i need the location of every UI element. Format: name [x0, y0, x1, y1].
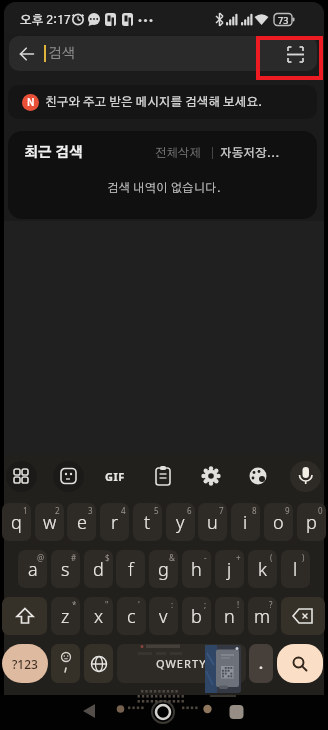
staticText: t	[144, 510, 151, 535]
staticText: -	[204, 552, 207, 562]
button[interactable]: x	[84, 597, 113, 635]
button[interactable]: QWERTY	[117, 644, 246, 683]
staticText: 5	[154, 505, 159, 515]
staticText: 4	[121, 505, 126, 515]
staticText: 검색	[48, 47, 75, 61]
staticText: q	[11, 510, 22, 535]
staticText: 6	[187, 505, 192, 515]
button[interactable]: v	[149, 597, 178, 635]
staticText: 3	[88, 505, 93, 515]
staticText: d	[93, 557, 104, 582]
button[interactable]: k	[248, 550, 277, 588]
staticText: 2	[55, 505, 60, 515]
button[interactable]: j	[215, 550, 244, 588]
button[interactable]: d	[84, 550, 113, 588]
button[interactable]: y	[166, 503, 195, 541]
staticText: "	[105, 599, 109, 609]
staticText: (	[270, 552, 273, 562]
button[interactable]: ?123	[2, 644, 48, 683]
staticText: 최근 검색	[24, 146, 84, 160]
staticText: &	[169, 552, 175, 562]
staticText: w	[43, 510, 57, 535]
staticText: o	[273, 510, 284, 535]
button[interactable]: s	[51, 550, 80, 588]
button[interactable]	[17, 44, 37, 64]
staticText: y	[176, 510, 185, 535]
staticText: )	[302, 552, 305, 562]
staticText: 7	[219, 505, 224, 515]
button[interactable]	[53, 461, 84, 492]
button[interactable]: b	[182, 597, 211, 635]
staticText: j	[227, 557, 232, 582]
staticText: c	[127, 604, 136, 629]
staticText: QWERTY	[156, 656, 207, 671]
staticText: v	[159, 604, 168, 629]
staticText: !	[237, 599, 240, 609]
staticText: s	[61, 557, 70, 582]
staticText: p	[306, 510, 317, 535]
button[interactable]	[2, 597, 47, 635]
staticText: @	[37, 552, 45, 562]
staticText: *	[72, 599, 77, 609]
staticText: 전체삭제	[155, 147, 202, 159]
staticText: h	[191, 557, 202, 582]
staticText: u	[207, 510, 218, 535]
staticText: 검색 내역이 없습니다.	[107, 182, 221, 194]
button[interactable]	[51, 644, 80, 683]
staticText: l	[293, 557, 298, 582]
button[interactable]: e	[67, 503, 96, 541]
button[interactable]: l	[281, 550, 310, 588]
button[interactable]	[84, 644, 113, 683]
staticText: ?123	[12, 656, 38, 672]
button[interactable]: c	[117, 597, 146, 635]
button[interactable]: g	[149, 550, 178, 588]
button[interactable]: i	[231, 503, 260, 541]
staticText: 9	[285, 505, 290, 515]
button[interactable]: t	[133, 503, 162, 541]
staticText: e	[77, 510, 87, 535]
button[interactable]	[277, 644, 323, 683]
staticText: g	[158, 557, 169, 582]
button[interactable]: n	[215, 597, 244, 635]
staticText: 73	[278, 14, 289, 26]
staticText: ?	[269, 599, 273, 609]
staticText: #	[71, 552, 77, 562]
button[interactable]: r	[100, 503, 129, 541]
button[interactable]	[8, 85, 317, 119]
staticText: 1	[23, 505, 28, 515]
staticText: 0	[318, 505, 323, 515]
button[interactable]: p	[297, 503, 326, 541]
staticText: m	[254, 604, 271, 629]
button[interactable]: w	[35, 503, 64, 541]
staticText: GIF	[105, 469, 125, 484]
staticText: f	[128, 557, 134, 582]
button[interactable]	[287, 46, 304, 63]
button[interactable]	[9, 36, 317, 71]
staticText: 8	[252, 505, 257, 515]
button[interactable]: z	[51, 597, 80, 635]
button[interactable]: f	[116, 550, 145, 588]
staticText: n	[224, 604, 235, 629]
button[interactable]: u	[198, 503, 227, 541]
staticText: ;	[204, 599, 207, 609]
button[interactable]	[281, 597, 325, 635]
button[interactable]: o	[264, 503, 293, 541]
button[interactable]	[6, 461, 37, 492]
staticText: '	[138, 599, 140, 609]
staticText: r	[111, 510, 119, 535]
button[interactable]: h	[182, 550, 211, 588]
staticText: 자동저장...	[220, 147, 280, 159]
button[interactable]: m	[248, 597, 277, 635]
button[interactable]	[290, 461, 321, 492]
staticText: 친구와 주고 받은 메시지를 검색해 보세요.	[45, 96, 263, 108]
staticText: b	[191, 604, 202, 629]
staticText: k	[258, 557, 267, 582]
staticText: a	[28, 557, 38, 582]
staticText: +	[236, 552, 241, 562]
button[interactable]: a	[18, 550, 47, 588]
button[interactable]: .	[249, 644, 273, 683]
staticText: i	[243, 510, 248, 535]
button[interactable]: q	[2, 503, 31, 541]
staticText: 오후 2:17	[20, 14, 71, 26]
